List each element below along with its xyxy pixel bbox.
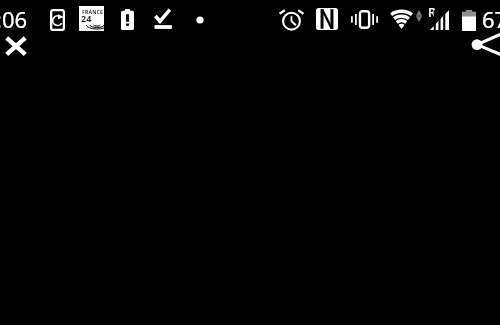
button[interactable]: Close: [0, 31, 34, 65]
button[interactable]: Share: [464, 28, 500, 64]
staticText: FRANCE: [82, 8, 103, 15]
staticText: 24: [81, 12, 92, 24]
staticText: :06: [0, 4, 28, 34]
staticText: R: [428, 4, 436, 21]
staticText: 67: [482, 4, 500, 34]
